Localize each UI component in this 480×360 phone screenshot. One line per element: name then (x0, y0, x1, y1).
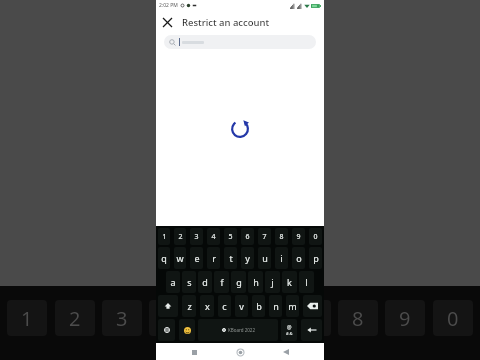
staticText: 0 (313, 232, 318, 242)
staticText: 7 (305, 305, 317, 332)
button[interactable]: 0 (309, 228, 322, 245)
button[interactable]: e (190, 247, 203, 269)
staticText: y (245, 252, 250, 264)
staticText: KBoard 2022 (228, 327, 255, 333)
button[interactable]: Enter (301, 319, 322, 341)
staticText: 3 (116, 305, 128, 332)
button[interactable]: d (198, 271, 212, 293)
button[interactable]: Shift (158, 295, 178, 317)
button[interactable]: o (292, 247, 305, 269)
button[interactable]: v (235, 295, 248, 317)
button[interactable]: h (248, 271, 263, 293)
staticText: m (288, 300, 297, 312)
button[interactable]: 8 (275, 228, 288, 245)
staticText: h (253, 276, 259, 288)
button[interactable] (164, 35, 316, 49)
staticText: p (313, 252, 319, 264)
staticText: 7 (262, 232, 267, 242)
staticText: r (212, 252, 216, 264)
button[interactable]: 6 (241, 228, 254, 245)
button[interactable]: 9 (292, 228, 305, 245)
staticText: 2 (178, 232, 183, 242)
staticText: @ (287, 324, 292, 331)
staticText: z (187, 300, 192, 312)
button[interactable]: j (265, 271, 280, 293)
button[interactable]: s (182, 271, 196, 293)
button[interactable]: p (309, 247, 322, 269)
button[interactable]: n (269, 295, 282, 317)
button[interactable]: a (166, 271, 180, 293)
button[interactable]: i (275, 247, 288, 269)
staticText: v (239, 300, 244, 312)
staticText: w (176, 252, 184, 264)
button[interactable]: l (299, 271, 314, 293)
button[interactable]: Home (232, 344, 248, 360)
staticText: 9 (399, 305, 411, 332)
button[interactable]: 2 (174, 228, 186, 245)
button[interactable]: c (218, 295, 231, 317)
staticText: 2 (69, 305, 81, 332)
button[interactable]: Emoji (179, 319, 195, 341)
staticText: b (256, 300, 262, 312)
button[interactable]: m (286, 295, 299, 317)
staticText: 8 (279, 232, 284, 242)
staticText: 4 (211, 232, 216, 242)
staticText: i (280, 252, 283, 264)
button[interactable]: t (224, 247, 237, 269)
staticText: l (305, 276, 308, 288)
staticText: q (161, 252, 167, 264)
staticText: n (273, 300, 279, 312)
staticText: # & (286, 331, 293, 336)
button[interactable]: q (158, 247, 170, 269)
button[interactable]: y (241, 247, 254, 269)
staticText: t (229, 252, 233, 264)
button[interactable]: Back (278, 344, 294, 360)
staticText: 0 (447, 305, 459, 332)
button[interactable]: Close (156, 11, 178, 33)
staticText: j (271, 276, 274, 288)
staticText: f (220, 276, 224, 288)
button[interactable]: w (174, 247, 186, 269)
staticText: o (296, 252, 302, 264)
staticText: Restrict an account (182, 16, 270, 29)
button[interactable]: 7 (258, 228, 271, 245)
button[interactable]: Space (198, 319, 278, 341)
button[interactable]: g (231, 271, 246, 293)
button[interactable]: x (200, 295, 214, 317)
staticText: 6 (258, 305, 270, 332)
staticText: a (170, 276, 176, 288)
staticText: 3 (194, 232, 199, 242)
button[interactable]: b (252, 295, 265, 317)
staticText: d (202, 276, 208, 288)
staticText: 6 (245, 232, 250, 242)
staticText: c (222, 300, 227, 312)
button[interactable]: Recents (186, 344, 202, 360)
staticText: 5 (228, 232, 233, 242)
button[interactable]: k (282, 271, 297, 293)
button[interactable]: 3 (190, 228, 203, 245)
button[interactable]: Change keyboard (158, 319, 175, 341)
button[interactable]: Symbols (281, 319, 297, 341)
button[interactable]: Backspace (303, 295, 322, 317)
staticText: 1 (162, 232, 167, 242)
button[interactable]: r (207, 247, 220, 269)
staticText: 1 (21, 305, 33, 332)
button[interactable]: f (214, 271, 229, 293)
staticText: 8 (352, 305, 364, 332)
staticText: g (236, 276, 242, 288)
staticText: x (205, 300, 210, 312)
staticText: s (187, 276, 192, 288)
staticText: u (262, 252, 268, 264)
button[interactable]: z (182, 295, 196, 317)
staticText: 9 (296, 232, 301, 242)
staticText: 2:02 PM (159, 2, 178, 9)
button[interactable]: 1 (158, 228, 170, 245)
button[interactable]: 4 (207, 228, 220, 245)
staticText: 5 (210, 305, 222, 332)
staticText: 4 (163, 305, 175, 332)
staticText: k (287, 276, 292, 288)
staticText: e (194, 252, 200, 264)
button[interactable]: u (258, 247, 271, 269)
button[interactable]: 5 (224, 228, 237, 245)
